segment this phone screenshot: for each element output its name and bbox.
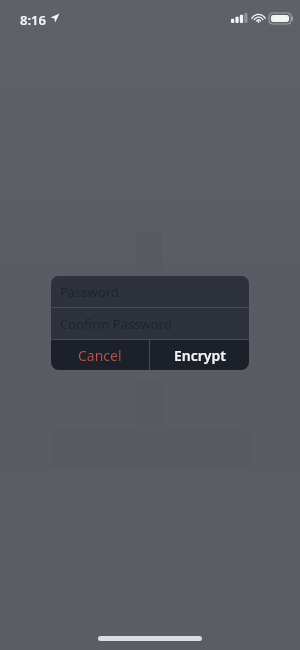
staticText: 8:16 [20, 11, 46, 29]
button[interactable]: Encrypt [150, 340, 249, 370]
staticText: Password [60, 283, 119, 301]
other: Cellular signal [231, 13, 248, 23]
other: Battery full [269, 13, 294, 24]
button[interactable]: Password [51, 276, 249, 307]
staticText: Cancel [78, 346, 122, 365]
other: Location active [50, 13, 60, 23]
staticText: Confirm Password [60, 315, 172, 333]
other: Wi-Fi [252, 13, 265, 23]
button[interactable]: Cancel [51, 340, 149, 370]
staticText: Encrypt [174, 346, 226, 365]
